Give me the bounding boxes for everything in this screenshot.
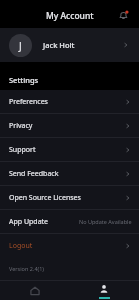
staticText: No Update Available — [79, 218, 132, 225]
button[interactable]: App Update — [0, 210, 139, 233]
staticText: Logout — [9, 241, 33, 251]
staticText: Jack Holt — [43, 40, 75, 50]
staticText: J — [19, 39, 22, 53]
button[interactable]: Send Feedback — [0, 162, 139, 185]
staticText: Preferences — [9, 97, 48, 107]
staticText: Version 2.4(1) — [9, 265, 44, 272]
staticText: My Account — [46, 10, 94, 22]
button[interactable]: J — [0, 28, 139, 62]
button[interactable]: Privacy — [0, 114, 139, 137]
staticText: Settings — [9, 75, 39, 85]
staticText: Send Feedback — [9, 169, 59, 179]
button[interactable]: Home — [0, 281, 69, 300]
button[interactable]: Open Source Licenses — [0, 186, 139, 209]
staticText: App Update — [9, 217, 49, 227]
button[interactable]: Notifications — [115, 7, 133, 25]
button[interactable]: Preferences — [0, 90, 139, 113]
staticText: Privacy — [9, 121, 33, 131]
staticText: Support — [9, 145, 36, 155]
staticText: Open Source Licenses — [9, 193, 81, 203]
button[interactable]: Support — [0, 138, 139, 161]
button[interactable]: Logout — [0, 234, 139, 257]
button[interactable]: Account — [69, 281, 139, 300]
